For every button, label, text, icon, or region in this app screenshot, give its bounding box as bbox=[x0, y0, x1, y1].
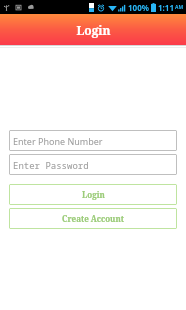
staticText: Enter Password bbox=[13, 159, 89, 171]
staticText: Create Account bbox=[62, 213, 124, 224]
staticText: AM bbox=[175, 4, 184, 11]
staticText: Login bbox=[76, 22, 111, 38]
button[interactable]: Enter Password bbox=[9, 154, 177, 175]
staticText: 1:11 bbox=[158, 2, 174, 13]
button[interactable]: Enter Phone Number bbox=[9, 130, 177, 151]
staticText: Enter Phone Number bbox=[13, 135, 103, 147]
button[interactable]: Create Account bbox=[9, 208, 177, 229]
staticText: Login bbox=[82, 189, 105, 200]
button[interactable]: Login bbox=[9, 184, 177, 205]
staticText: 100% bbox=[128, 2, 149, 13]
